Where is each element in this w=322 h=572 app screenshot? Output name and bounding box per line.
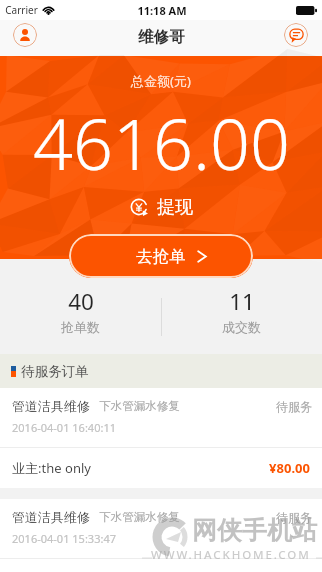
staticText: 40: [68, 286, 94, 317]
button[interactable]: 管道洁具维修: [0, 388, 322, 488]
staticText: 11:18 AM: [137, 3, 187, 18]
button[interactable]: 11: [161, 278, 322, 335]
staticText: 总金额(元): [131, 72, 191, 90]
button[interactable]: 40: [0, 278, 161, 335]
button[interactable]: Messages: [284, 23, 308, 47]
staticText: ¥80.00: [269, 459, 310, 477]
staticText: 11: [229, 286, 255, 317]
staticText: 待服务: [276, 510, 312, 525]
staticText: 成交数: [222, 319, 261, 335]
staticText: 提现: [157, 196, 193, 219]
staticText: 4616.00: [33, 95, 290, 190]
staticText: WWW.HACKHOME.COM: [151, 547, 311, 563]
button[interactable]: 提现: [124, 194, 199, 221]
staticText: 2016-04-01 15:33:47: [12, 531, 116, 546]
staticText: Carrier: [5, 3, 38, 17]
button[interactable]: 管道洁具维修: [0, 499, 322, 572]
staticText: 管道洁具维修: [12, 509, 90, 525]
staticText: 待服务订单: [21, 363, 89, 380]
staticText: 网侠手机站: [192, 515, 317, 546]
staticText: 抢单数: [61, 319, 100, 335]
staticText: 去抢单: [136, 246, 186, 267]
staticText: 下水管漏水修复: [99, 399, 180, 413]
button[interactable]: Profile: [13, 23, 37, 47]
button[interactable]: 去抢单: [69, 234, 253, 278]
staticText: 2016-04-01 16:40:11: [12, 420, 116, 435]
staticText: 维修哥: [138, 27, 185, 47]
staticText: 下水管漏水修复: [99, 510, 180, 524]
staticText: 管道洁具维修: [12, 398, 90, 414]
staticText: 待服务: [276, 399, 312, 414]
staticText: 业主:the only: [12, 459, 91, 477]
